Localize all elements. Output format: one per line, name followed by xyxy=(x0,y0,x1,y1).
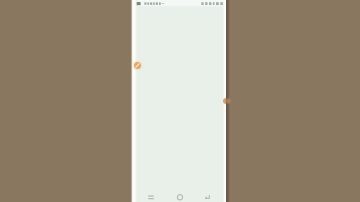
button[interactable]: Recents xyxy=(146,192,156,202)
button[interactable]: Home xyxy=(175,192,185,202)
button[interactable]: Edit xyxy=(133,61,142,70)
button[interactable]: Add xyxy=(223,98,229,104)
button[interactable]: Back xyxy=(202,192,212,202)
